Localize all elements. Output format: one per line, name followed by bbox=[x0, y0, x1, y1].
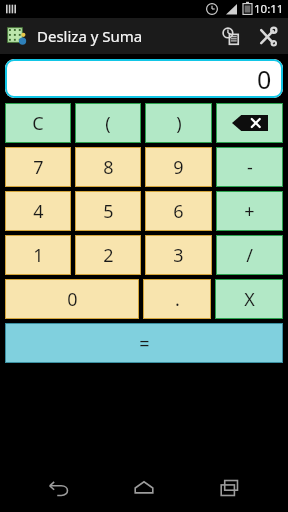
staticText: 9 bbox=[173, 155, 184, 180]
staticText: 7 bbox=[33, 155, 44, 180]
staticText: ) bbox=[176, 111, 182, 136]
staticText: / bbox=[246, 243, 253, 268]
button[interactable]: . bbox=[143, 279, 211, 319]
button[interactable]: History bbox=[213, 18, 249, 54]
button[interactable]: C bbox=[5, 103, 71, 143]
staticText: = bbox=[139, 331, 150, 356]
button[interactable]: 2 bbox=[75, 235, 141, 275]
staticText: - bbox=[247, 155, 253, 180]
button[interactable]: 0 bbox=[5, 279, 139, 319]
button[interactable]: 4 bbox=[5, 191, 71, 231]
staticText: 5 bbox=[103, 199, 114, 224]
staticText: 10:11 bbox=[254, 1, 284, 17]
button[interactable]: Settings bbox=[249, 18, 285, 54]
button[interactable]: Home bbox=[117, 464, 171, 512]
button[interactable]: - bbox=[216, 147, 283, 187]
staticText: 0 bbox=[67, 287, 78, 312]
button[interactable]: 6 bbox=[145, 191, 212, 231]
staticText: + bbox=[244, 199, 255, 224]
button[interactable]: Recent apps bbox=[203, 464, 257, 512]
staticText: . bbox=[175, 287, 180, 312]
button[interactable]: 5 bbox=[75, 191, 141, 231]
staticText: 4 bbox=[33, 199, 44, 224]
staticText: 6 bbox=[173, 199, 184, 224]
button[interactable]: ( bbox=[75, 103, 141, 143]
button[interactable]: 0 bbox=[5, 59, 283, 98]
button[interactable]: / bbox=[216, 235, 283, 275]
button[interactable]: 8 bbox=[75, 147, 141, 187]
staticText: 8 bbox=[103, 155, 114, 180]
button[interactable]: = bbox=[5, 323, 283, 363]
staticText: 2 bbox=[103, 243, 114, 268]
button[interactable]: X bbox=[215, 279, 283, 319]
staticText: 0 bbox=[257, 62, 272, 96]
button[interactable]: ) bbox=[145, 103, 212, 143]
staticText: X bbox=[244, 287, 255, 312]
staticText: ( bbox=[105, 111, 111, 136]
button[interactable]: Backspace bbox=[216, 103, 283, 143]
staticText: C bbox=[32, 111, 44, 136]
button[interactable]: 7 bbox=[5, 147, 71, 187]
staticText: 1 bbox=[33, 243, 44, 268]
button[interactable]: 1 bbox=[5, 235, 71, 275]
button[interactable]: + bbox=[216, 191, 283, 231]
staticText: 3 bbox=[173, 243, 184, 268]
button[interactable]: 9 bbox=[145, 147, 212, 187]
staticText: Desliza y Suma bbox=[37, 26, 143, 46]
button[interactable]: Back bbox=[32, 464, 86, 512]
button[interactable]: 3 bbox=[145, 235, 212, 275]
